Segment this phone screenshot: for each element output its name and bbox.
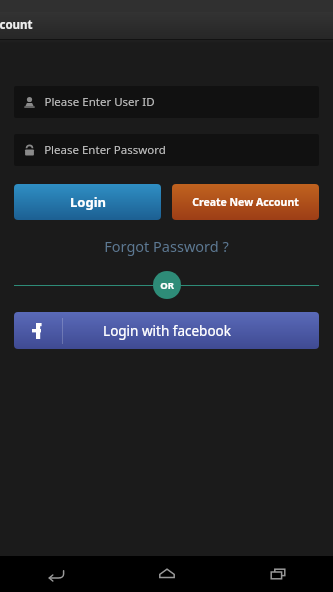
button[interactable]: Login with facebook [14, 312, 319, 349]
button[interactable]: Please Enter Password [14, 134, 319, 166]
staticText: Create New Account [192, 195, 299, 209]
button[interactable]: Create New Account [172, 184, 319, 220]
staticText: Login with facebook [103, 322, 231, 340]
button[interactable]: Back [0, 556, 111, 592]
staticText: OR [160, 279, 174, 292]
button[interactable]: Forgot Password ? [0, 234, 333, 258]
staticText: Login [70, 193, 106, 211]
button[interactable]: Home [111, 556, 222, 592]
staticText: Please Enter User ID [44, 94, 155, 110]
button[interactable]: Recents [222, 556, 333, 592]
staticText: Please Enter Password [44, 142, 166, 158]
staticText: Forgot Password ? [104, 236, 229, 256]
button[interactable]: Login [14, 184, 161, 220]
staticText: count [0, 17, 33, 33]
button[interactable]: Please Enter User ID [14, 86, 319, 118]
